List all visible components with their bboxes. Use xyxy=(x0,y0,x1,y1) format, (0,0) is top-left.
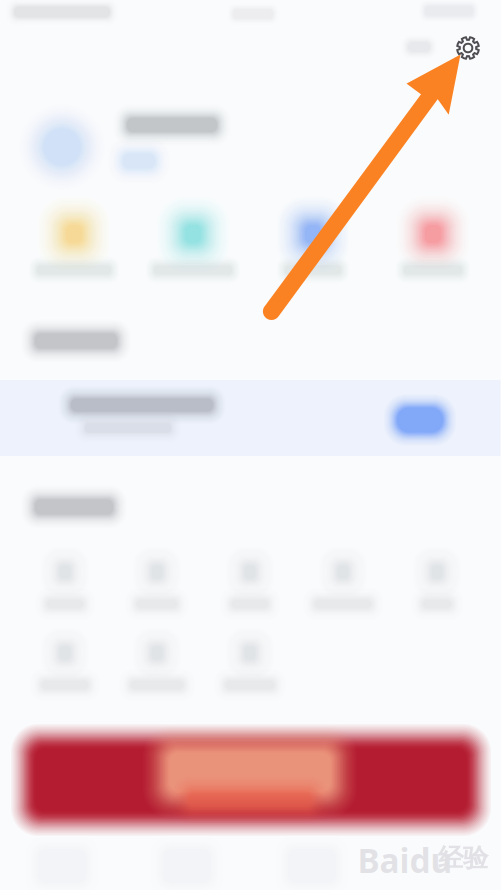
button[interactable]: Membership offer xyxy=(0,380,500,456)
button[interactable]: Profile xyxy=(10,105,310,185)
button[interactable]: Messages xyxy=(397,25,441,69)
button[interactable]: Promotion xyxy=(31,742,471,822)
button[interactable]: After-sales xyxy=(374,194,492,286)
staticText: 经验 xyxy=(438,842,488,873)
button[interactable]: Pending shipment xyxy=(134,194,252,286)
staticText: Baidu xyxy=(357,838,452,882)
button[interactable]: Pending delivery xyxy=(254,194,372,286)
button[interactable]: Settings xyxy=(446,26,490,70)
button[interactable]: Pending payment xyxy=(15,194,133,286)
